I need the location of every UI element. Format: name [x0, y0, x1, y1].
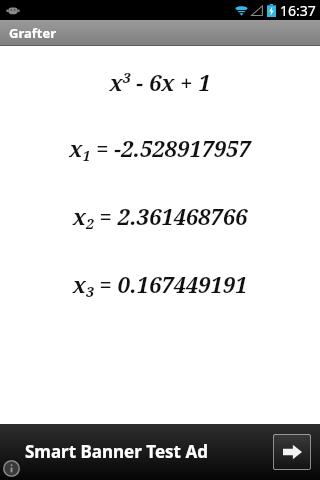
- staticText: 16:37: [280, 1, 316, 20]
- staticText: x3 − 6x + 1: [0, 67, 320, 97]
- staticText: x3 = 0.167449191: [0, 269, 320, 301]
- staticText: Grafter: [9, 24, 56, 42]
- button[interactable]: Smart Banner Test Ad: [0, 424, 320, 480]
- button[interactable]: Open ad: [273, 434, 311, 470]
- button[interactable]: Ad information: [3, 460, 20, 477]
- staticText: Smart Banner Test Ad: [25, 440, 208, 463]
- staticText: x2 = 2.361468766: [0, 201, 320, 233]
- button[interactable]: Grafter: [0, 20, 320, 46]
- staticText: x1 = −2.528917957: [0, 133, 320, 165]
